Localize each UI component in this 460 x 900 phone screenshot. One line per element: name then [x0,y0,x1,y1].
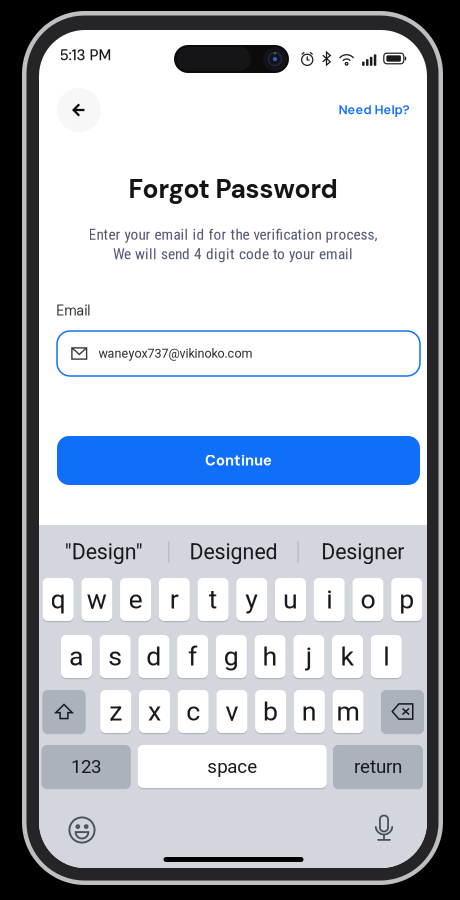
staticText: o [360,584,375,615]
button[interactable]: x [139,690,170,734]
button[interactable]: o [352,578,383,622]
button[interactable]: m [333,690,364,734]
staticText: m [337,696,360,727]
staticText: 5:13 PM [60,45,112,65]
button[interactable]: "Design" [39,528,168,576]
staticText: q [51,584,66,615]
staticText: a [69,641,84,672]
button[interactable]: t [197,578,228,622]
staticText: Designer [321,539,404,564]
button[interactable]: l [371,635,402,679]
button[interactable]: d [138,635,169,679]
staticText: f [188,641,197,672]
button[interactable]: b [255,690,286,734]
button[interactable]: Back [57,88,101,132]
staticText: 123 [71,756,101,777]
staticText: waneyox737@vikinoko.com [98,346,252,361]
button[interactable]: v [216,690,247,734]
staticText: return [354,756,402,777]
staticText: "Design" [65,539,143,564]
button[interactable]: f [177,635,208,679]
staticText: d [146,641,161,672]
button[interactable]: space [138,745,327,789]
staticText: w [87,584,107,615]
staticText: Forgot Password [128,172,337,206]
staticText: t [208,584,217,615]
staticText: space [207,756,257,777]
button[interactable]: Designed [169,528,298,576]
staticText: i [326,584,332,615]
staticText: We will send 4 digit code to your email [113,245,353,263]
staticText: p [399,584,414,615]
button[interactable]: Delete [381,690,424,734]
button[interactable]: n [294,690,325,734]
button[interactable]: Need Help? [336,97,412,123]
staticText: l [383,641,389,672]
staticText: z [109,696,122,727]
staticText: y [245,584,258,615]
button[interactable]: Dictate [371,813,397,843]
staticText: h [262,641,277,672]
staticText: Enter your email id for the verification… [88,225,377,243]
button[interactable]: s [100,635,131,679]
button[interactable]: u [275,578,306,622]
button[interactable]: j [293,635,324,679]
button[interactable]: Continue [57,436,420,485]
button[interactable]: 123 [42,745,131,789]
button[interactable]: r [159,578,190,622]
staticText: c [186,696,200,727]
button[interactable]: Shift [42,690,85,734]
staticText: k [340,641,354,672]
staticText: e [129,584,143,615]
button[interactable]: a [61,635,92,679]
staticText: Continue [205,451,272,470]
staticText: g [224,641,239,672]
button[interactable]: c [178,690,209,734]
staticText: b [263,696,278,727]
button[interactable]: Emoji [66,814,98,846]
staticText: r [170,584,179,615]
button[interactable]: return [333,745,423,789]
button[interactable]: i [314,578,345,622]
staticText: Email [56,301,90,320]
button[interactable]: y [236,578,267,622]
staticText: Designed [189,539,277,564]
button[interactable]: Designer [299,528,427,576]
button[interactable]: k [332,635,363,679]
button[interactable]: w [81,578,112,622]
button[interactable]: z [100,690,131,734]
staticText: n [302,696,317,727]
staticText: v [225,696,238,727]
button[interactable]: g [216,635,247,679]
staticText: x [148,696,161,727]
staticText: Need Help? [338,102,409,118]
button[interactable]: h [254,635,285,679]
staticText: j [306,641,312,672]
button[interactable]: q [43,578,74,622]
staticText: u [283,584,298,615]
button[interactable]: p [391,578,422,622]
staticText: s [108,641,122,672]
button[interactable]: e [120,578,151,622]
